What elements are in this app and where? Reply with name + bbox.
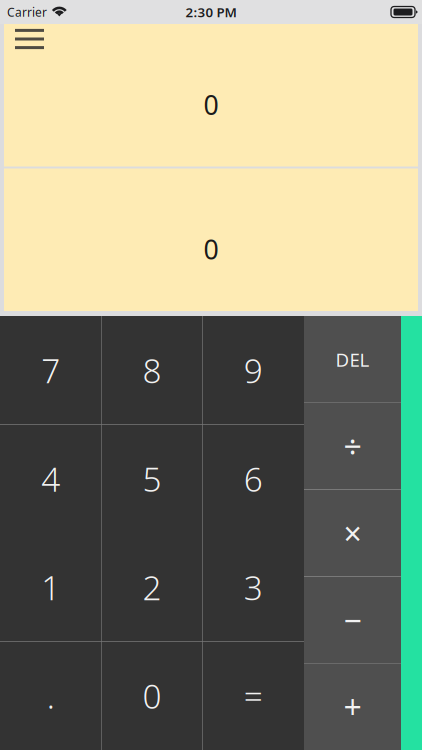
button[interactable]: − bbox=[304, 576, 401, 663]
staticText: 4 bbox=[41, 457, 60, 501]
button[interactable]: DEL bbox=[304, 316, 401, 403]
staticText: 2:30 PM bbox=[185, 3, 236, 21]
staticText: 0 bbox=[142, 674, 161, 718]
staticText: DEL bbox=[335, 347, 369, 372]
button[interactable]: 9 bbox=[203, 316, 304, 424]
button[interactable]: = bbox=[203, 641, 304, 750]
button[interactable]: 3 bbox=[203, 533, 304, 641]
button[interactable]: 5 bbox=[101, 424, 203, 533]
staticText: ÷ bbox=[343, 425, 361, 467]
staticText: 1 bbox=[41, 565, 60, 609]
staticText: 2 bbox=[142, 565, 161, 609]
button[interactable]: Menu bbox=[9, 26, 50, 52]
staticText: 3 bbox=[244, 565, 263, 609]
button[interactable]: ÷ bbox=[304, 403, 401, 490]
staticText: × bbox=[343, 512, 361, 554]
staticText: Carrier bbox=[7, 4, 47, 20]
staticText: − bbox=[343, 599, 361, 641]
staticText: = bbox=[244, 674, 263, 718]
button[interactable]: 1 bbox=[0, 533, 101, 641]
staticText: 5 bbox=[142, 457, 161, 501]
staticText: 7 bbox=[41, 348, 60, 392]
staticText: 9 bbox=[244, 348, 263, 392]
button[interactable]: 4 bbox=[0, 424, 101, 533]
button[interactable]: . bbox=[0, 641, 101, 750]
button[interactable]: 8 bbox=[101, 316, 203, 424]
button[interactable]: 7 bbox=[0, 316, 101, 424]
button[interactable]: × bbox=[304, 490, 401, 576]
button[interactable]: 2 bbox=[101, 533, 203, 641]
button[interactable]: 6 bbox=[203, 424, 304, 533]
staticText: 6 bbox=[244, 457, 263, 501]
staticText: + bbox=[343, 685, 361, 728]
staticText: 0 bbox=[203, 231, 218, 267]
button[interactable]: 0 bbox=[101, 641, 203, 750]
staticText: 0 bbox=[203, 87, 218, 122]
staticText: . bbox=[47, 674, 55, 718]
button[interactable]: + bbox=[304, 663, 401, 750]
staticText: 8 bbox=[142, 348, 161, 392]
